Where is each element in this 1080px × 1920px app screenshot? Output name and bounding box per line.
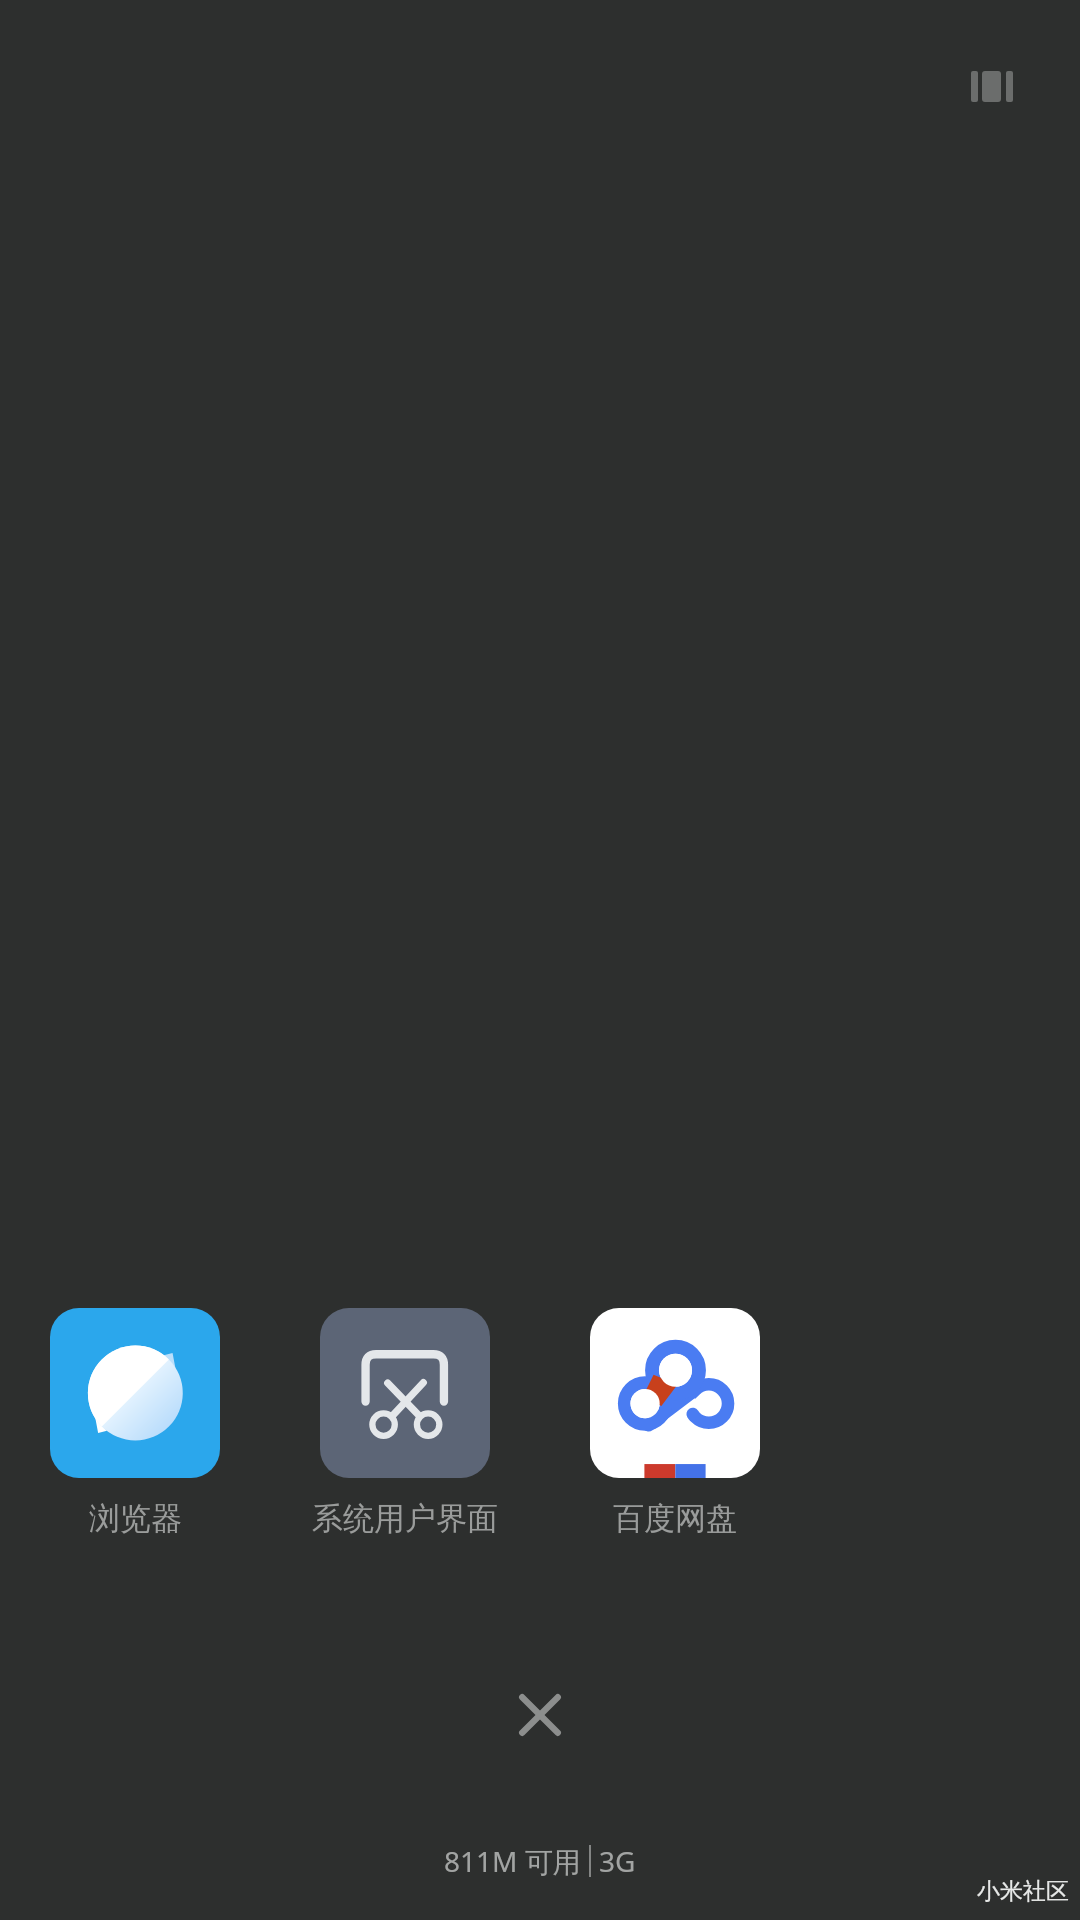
button[interactable]: Close all <box>480 1655 600 1775</box>
button[interactable]: 系统用户界面 <box>270 1308 540 1538</box>
staticText: 小米社区 <box>977 1877 1069 1906</box>
staticText: 811M 可用 <box>444 1842 581 1880</box>
staticText: 系统用户界面 <box>312 1499 498 1538</box>
staticText: 百度网盘 <box>613 1499 737 1538</box>
button[interactable]: 百度网盘 <box>540 1308 810 1538</box>
staticText: 3G <box>599 1842 636 1880</box>
button[interactable]: 浏览器 <box>0 1308 270 1538</box>
staticText: 浏览器 <box>89 1499 182 1538</box>
button[interactable]: Switch layout <box>943 43 1041 131</box>
